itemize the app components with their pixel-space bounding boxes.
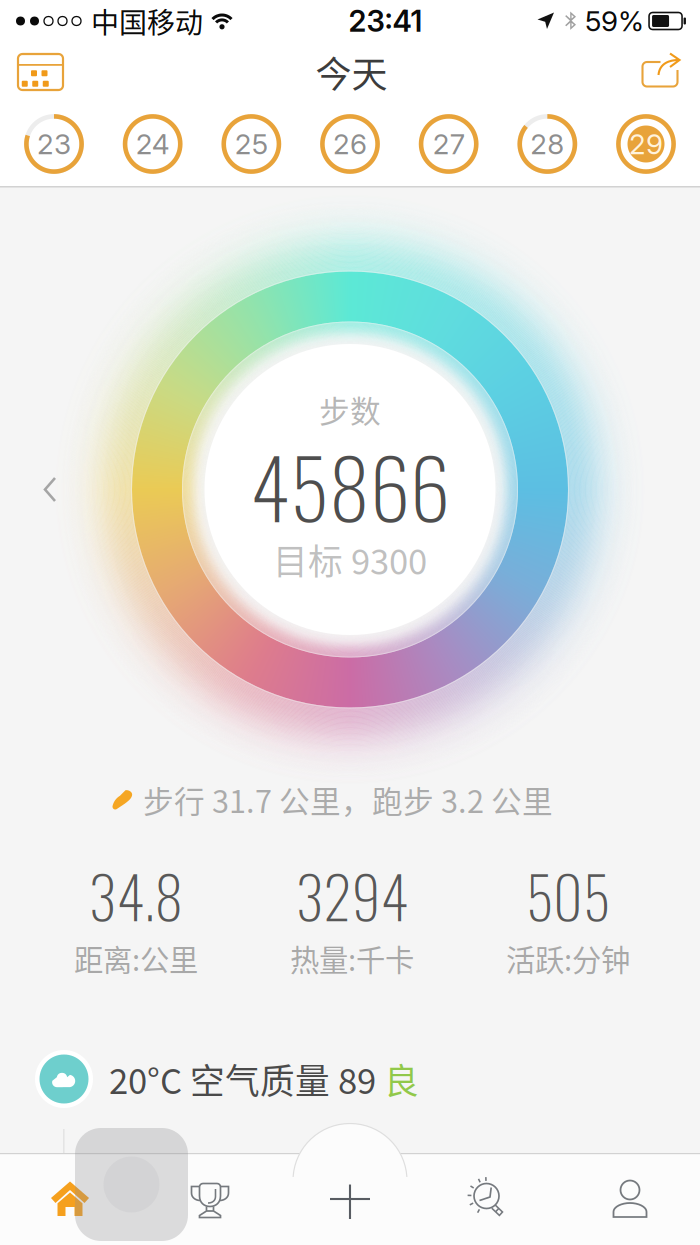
staticText: 59%	[585, 4, 644, 38]
staticText: 23	[37, 127, 71, 161]
staticText: 34.8	[88, 853, 183, 938]
staticText: 距离:公里	[74, 937, 198, 979]
staticText: 热量:千卡	[290, 937, 414, 979]
button[interactable]: 26	[320, 114, 380, 174]
staticText: 目标 9300	[273, 534, 427, 585]
staticText: 505	[526, 853, 610, 938]
button[interactable]: Profile	[560, 1153, 700, 1245]
button[interactable]: Add	[280, 1153, 420, 1245]
staticText: 29	[629, 127, 663, 161]
button[interactable]: 27	[419, 114, 479, 174]
staticText: 步数	[319, 387, 381, 432]
staticText: 25	[235, 127, 268, 161]
staticText: 良	[384, 1054, 419, 1104]
staticText: 28	[530, 127, 564, 161]
button[interactable]: 28	[517, 114, 577, 174]
button[interactable]: Calendar	[0, 42, 75, 102]
staticText: 23:41	[348, 3, 422, 39]
staticText: 3294	[295, 853, 408, 938]
staticText: 45866	[250, 425, 450, 546]
button[interactable]: 25	[221, 114, 281, 174]
staticText: 20°C 空气质量 89	[109, 1054, 384, 1104]
button[interactable]: Achievements	[140, 1153, 280, 1245]
staticText: 26	[333, 127, 367, 161]
staticText: 中国移动	[91, 1, 203, 41]
staticText: 今天	[315, 46, 387, 98]
button[interactable]: Discover	[420, 1153, 560, 1245]
staticText: 活跃:分钟	[506, 937, 630, 979]
button[interactable]: 24	[123, 114, 183, 174]
button[interactable]: Share	[628, 42, 700, 102]
button[interactable]: 29	[616, 114, 676, 174]
staticText: 27	[433, 127, 465, 161]
staticText: 步行 31.7 公里，跑步 3.2 公里	[143, 777, 553, 822]
button[interactable]: 23	[24, 114, 84, 174]
button[interactable]: Home	[0, 1153, 140, 1245]
staticText: 24	[136, 127, 170, 161]
